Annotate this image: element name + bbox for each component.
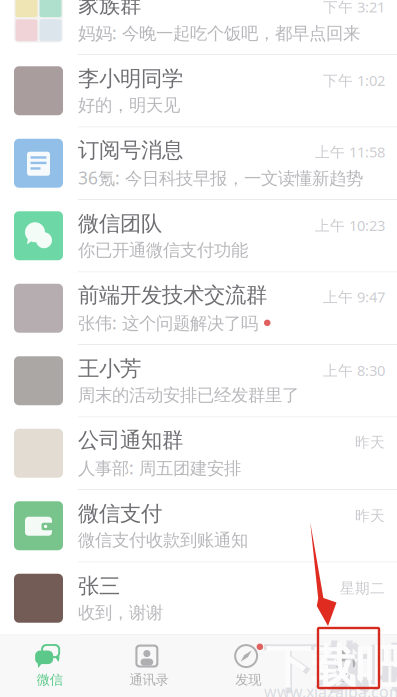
staticText: 上午 10:23 <box>315 215 385 235</box>
staticText: 微信 <box>37 672 63 688</box>
button[interactable]: 前端开发技术交流群 <box>0 272 397 345</box>
staticText: 星期二 <box>340 579 385 597</box>
staticText: 张三 <box>78 573 120 599</box>
button[interactable]: 发现 <box>198 638 298 694</box>
staticText: 下午 1:02 <box>323 70 385 90</box>
button[interactable]: 微信团队 <box>0 200 397 272</box>
button[interactable]: 我 <box>298 638 397 694</box>
staticText: 公司通知群 <box>78 427 183 453</box>
button[interactable]: 订阅号消息 <box>0 127 397 200</box>
button[interactable]: 通讯录 <box>99 638 198 694</box>
button[interactable]: 张三 <box>0 562 397 635</box>
staticText: 家族群 <box>78 0 141 18</box>
staticText: 王小芳 <box>78 355 141 382</box>
staticText: 你已开通微信支付功能 <box>78 240 248 261</box>
staticText: 下载吧 <box>266 639 397 695</box>
staticText: 上午 8:30 <box>323 360 385 380</box>
staticText: 上午 11:58 <box>315 142 385 162</box>
staticText: 人事部: 周五团建安排 <box>78 456 241 479</box>
button[interactable]: 公司通知群 <box>0 417 397 490</box>
staticText: 李小明同学 <box>78 65 183 92</box>
staticText: 微信支付收款到账通知 <box>78 530 248 551</box>
staticText: 通讯录 <box>129 672 168 688</box>
staticText: 发现 <box>235 672 261 688</box>
button[interactable]: 李小明同学 <box>0 55 397 127</box>
button[interactable]: 微信支付 <box>0 490 397 562</box>
staticText: 上午 9:47 <box>323 287 385 307</box>
staticText: 微信支付 <box>78 500 162 527</box>
staticText: 周末的活动安排已经发群里了 <box>78 385 299 406</box>
staticText: 36氪: 今日科技早报，一文读懂新趋势 <box>78 166 363 189</box>
button[interactable]: 王小芳 <box>0 345 397 417</box>
staticText: 微信团队 <box>78 210 162 237</box>
staticText: 昨天 <box>355 507 385 525</box>
staticText: 我 <box>341 672 354 688</box>
button[interactable]: 微信 <box>0 638 99 694</box>
staticText: 下载吧 <box>263 636 397 697</box>
staticText: 好的，明天见 <box>78 95 180 116</box>
staticText: 订阅号消息 <box>78 137 183 163</box>
staticText: 妈妈: 今晚一起吃个饭吧，都早点回来 <box>78 21 360 44</box>
staticText: www.xiazaiba.com <box>264 681 397 697</box>
staticText: 张伟: 这个问题解决了吗 <box>78 311 258 334</box>
staticText: 前端开发技术交流群 <box>78 282 267 308</box>
staticText: 昨天 <box>355 433 385 451</box>
button[interactable]: 家族群 <box>0 0 397 55</box>
staticText: 收到，谢谢 <box>78 602 163 623</box>
staticText: 下午 3:21 <box>323 0 385 17</box>
